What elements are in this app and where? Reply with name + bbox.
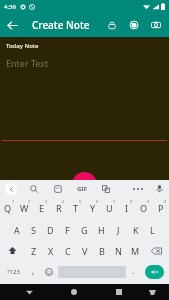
button[interactable]: Hide keyboard <box>142 284 162 300</box>
button[interactable]: Emoji <box>40 261 58 283</box>
button[interactable]: Camera <box>145 14 167 36</box>
staticText: 9 <box>147 199 150 204</box>
button[interactable]: L <box>144 219 161 240</box>
button[interactable]: N <box>110 240 127 261</box>
staticText: D <box>47 224 54 236</box>
button[interactable]: Z <box>25 240 42 261</box>
button[interactable]: V <box>76 240 93 261</box>
button[interactable]: Lock note <box>101 14 123 36</box>
staticText: , <box>32 265 35 276</box>
staticText: S <box>31 224 36 236</box>
button[interactable]: . <box>126 261 140 283</box>
button[interactable]: I <box>118 197 135 219</box>
staticText: Q <box>4 202 12 214</box>
staticText: 4:39 <box>4 3 16 11</box>
staticText: F <box>65 224 70 236</box>
button[interactable]: A <box>8 219 25 240</box>
button[interactable]: Home <box>64 284 84 300</box>
staticText: J <box>117 224 120 236</box>
staticText: C <box>65 245 71 257</box>
staticText: O <box>140 202 148 214</box>
button[interactable]: GIF <box>70 180 94 197</box>
staticText: R <box>56 202 62 214</box>
staticText: 3 <box>45 199 48 204</box>
button[interactable]: Enter <box>145 265 164 279</box>
button[interactable]: Y <box>84 197 101 219</box>
button[interactable]: H <box>93 219 110 240</box>
button[interactable]: Translate <box>94 180 118 197</box>
button[interactable]: B <box>93 240 110 261</box>
staticText: 0 <box>164 199 167 204</box>
button[interactable]: , <box>26 261 40 283</box>
button[interactable]: Change colour <box>123 14 145 36</box>
button[interactable]: ?123 <box>0 261 26 283</box>
staticText: W <box>20 202 29 214</box>
button[interactable]: Stickers <box>46 180 70 197</box>
staticText: 5 <box>79 199 82 204</box>
staticText: X <box>48 245 54 257</box>
staticText: Today Note <box>6 42 39 50</box>
staticText: 2 <box>28 199 31 204</box>
staticText: N <box>115 245 122 257</box>
staticText: G <box>81 224 88 236</box>
staticText: V <box>82 245 88 257</box>
staticText: 4 <box>62 199 65 204</box>
staticText: Create Note <box>32 18 90 32</box>
staticText: P <box>158 202 164 214</box>
button[interactable]: Voice input <box>149 180 169 197</box>
button[interactable]: S <box>25 219 42 240</box>
staticText: A <box>14 224 20 236</box>
staticText: 1 <box>12 199 15 204</box>
staticText: Z <box>31 245 37 257</box>
button[interactable]: Back <box>19 284 39 300</box>
button[interactable]: X <box>42 240 59 261</box>
staticText: K <box>133 224 139 236</box>
button[interactable]: E <box>33 197 50 219</box>
button[interactable]: Save note <box>72 172 97 197</box>
staticText: T <box>73 202 79 214</box>
staticText: L <box>150 224 155 236</box>
staticText: Y <box>90 202 96 214</box>
button[interactable]: G <box>76 219 93 240</box>
button[interactable]: R <box>50 197 67 219</box>
staticText: 8 <box>130 199 133 204</box>
staticText: M <box>131 245 140 257</box>
staticText: I <box>125 202 129 214</box>
button[interactable]: Expand toolbar <box>0 180 22 197</box>
button[interactable]: U <box>101 197 118 219</box>
staticText: 6 <box>96 199 99 204</box>
button[interactable]: Backspace <box>144 240 169 261</box>
staticText: 7 <box>113 199 116 204</box>
button[interactable]: Back <box>0 13 24 37</box>
staticText: . <box>132 265 135 276</box>
button[interactable]: M <box>127 240 144 261</box>
button[interactable]: More options <box>127 180 149 197</box>
button[interactable]: Shift <box>0 240 25 261</box>
button[interactable]: Recent apps <box>109 284 129 300</box>
button[interactable]: D <box>42 219 59 240</box>
staticText: B <box>99 245 105 257</box>
button[interactable]: O <box>135 197 152 219</box>
button[interactable]: C <box>59 240 76 261</box>
staticText: GIF <box>77 185 87 193</box>
button[interactable]: Q <box>0 197 16 219</box>
button[interactable]: Search <box>22 180 46 197</box>
button[interactable]: P <box>152 197 169 219</box>
staticText: Enter Text <box>6 57 49 69</box>
staticText: ?123 <box>7 268 20 276</box>
staticText: E <box>39 202 45 214</box>
button[interactable]: F <box>59 219 76 240</box>
button[interactable]: W <box>16 197 33 219</box>
button[interactable]: T <box>67 197 84 219</box>
button[interactable]: J <box>110 219 127 240</box>
staticText: U <box>106 202 113 214</box>
staticText: H <box>98 224 105 236</box>
button[interactable]: K <box>127 219 144 240</box>
